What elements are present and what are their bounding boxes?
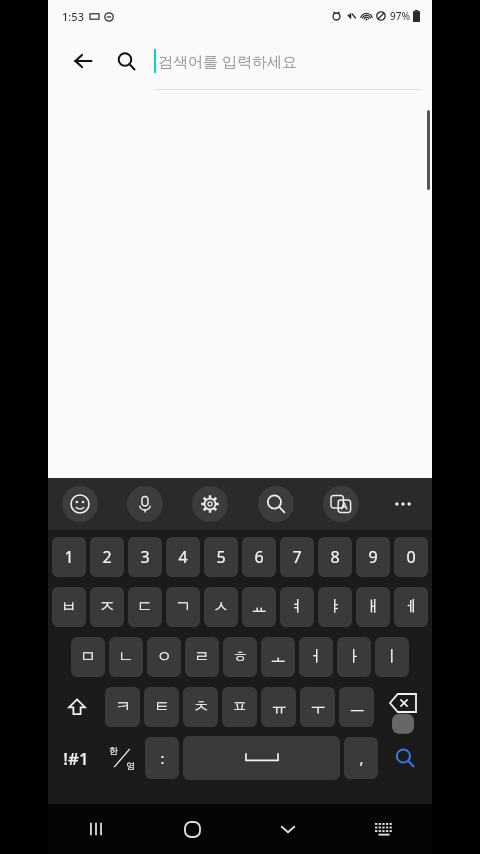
button[interactable]: 8 <box>318 537 352 577</box>
staticText: ㅈ <box>99 597 115 617</box>
button[interactable]: Home <box>144 804 240 854</box>
button[interactable]: ㅇ <box>147 637 181 677</box>
staticText: ㅇ <box>156 647 172 667</box>
button[interactable]: 2 <box>90 537 124 577</box>
button[interactable]: ㄷ <box>128 587 162 627</box>
button[interactable]: 5 <box>204 537 238 577</box>
button[interactable]: 6 <box>242 537 276 577</box>
button[interactable]: ㅜ <box>300 687 335 727</box>
button[interactable]: ㅅ <box>204 587 238 627</box>
button[interactable]: Space <box>183 736 340 780</box>
staticText: ㄷ <box>137 597 153 617</box>
staticText: !#1 <box>63 747 89 770</box>
staticText: ㅡ <box>349 697 365 717</box>
staticText: ㅕ <box>289 597 305 617</box>
button[interactable]: ㅡ <box>339 687 374 727</box>
button[interactable]: ㅋ <box>105 687 140 727</box>
staticText: 9 <box>368 546 378 568</box>
button[interactable]: Emoji <box>62 486 98 522</box>
button[interactable]: Back <box>66 44 100 78</box>
staticText: 영 <box>126 760 135 771</box>
button[interactable]: Keyboard settings <box>192 486 228 522</box>
staticText: ㅐ <box>365 597 381 617</box>
staticText: ㄱ <box>175 597 191 617</box>
button[interactable]: ㅔ <box>394 587 428 627</box>
button[interactable]: 3 <box>128 537 162 577</box>
button[interactable]: Shift <box>50 682 103 732</box>
button[interactable]: ㅐ <box>356 587 390 627</box>
button[interactable]: !#1 <box>50 732 101 784</box>
staticText: 5 <box>216 546 226 568</box>
button[interactable]: 9 <box>356 537 390 577</box>
staticText: ㅂ <box>61 597 77 617</box>
staticText: ㅌ <box>154 697 170 717</box>
staticText: ㅓ <box>308 647 324 667</box>
button[interactable]: , <box>344 737 378 779</box>
button[interactable]: ㅣ <box>375 637 409 677</box>
staticText: : <box>160 748 165 768</box>
button[interactable]: 0 <box>394 537 428 577</box>
button[interactable]: More options <box>388 489 418 519</box>
button[interactable]: 7 <box>280 537 314 577</box>
button[interactable]: Backspace <box>376 682 430 732</box>
button[interactable]: Search <box>380 732 430 784</box>
staticText: 0 <box>406 546 416 568</box>
button[interactable]: ㅗ <box>261 637 295 677</box>
button[interactable]: Change keyboard <box>336 804 432 854</box>
button[interactable]: Search <box>110 45 142 77</box>
button[interactable]: : <box>145 737 179 779</box>
staticText: ㅁ <box>80 647 96 667</box>
staticText: ㅜ <box>310 697 326 717</box>
button[interactable]: ㅂ <box>52 587 86 627</box>
staticText: 6 <box>254 546 264 568</box>
staticText: 8 <box>330 546 340 568</box>
staticText: ㅊ <box>193 697 209 717</box>
staticText: 7 <box>292 546 302 568</box>
staticText: 1 <box>64 546 74 568</box>
button[interactable]: ㄱ <box>166 587 200 627</box>
staticText: ㅅ <box>213 597 229 617</box>
button[interactable]: ㅏ <box>337 637 371 677</box>
button[interactable]: 1 <box>52 537 86 577</box>
staticText: ㅗ <box>270 647 286 667</box>
staticText: 검색어를 입력하세요 <box>158 51 297 71</box>
button[interactable]: ㅈ <box>90 587 124 627</box>
button[interactable]: ㅕ <box>280 587 314 627</box>
staticText: ㄴ <box>118 647 134 667</box>
staticText: 1:53 <box>62 9 84 24</box>
staticText: ㅔ <box>403 597 419 617</box>
button[interactable]: ㅊ <box>183 687 218 727</box>
staticText: ㅣ <box>384 647 400 667</box>
button[interactable]: Translate <box>323 486 359 522</box>
staticText: ㅠ <box>271 697 287 717</box>
staticText: 한 <box>109 745 118 756</box>
button[interactable]: ㅠ <box>261 687 296 727</box>
staticText: ㅍ <box>232 697 248 717</box>
staticText: ㅋ <box>115 697 131 717</box>
staticText: 3 <box>140 546 150 568</box>
staticText: , <box>359 748 364 768</box>
button[interactable]: ㅛ <box>242 587 276 627</box>
button[interactable]: ㅍ <box>222 687 257 727</box>
button[interactable]: ㄴ <box>109 637 143 677</box>
button[interactable]: ㅁ <box>71 637 105 677</box>
staticText: ㅛ <box>251 597 267 617</box>
button[interactable]: Voice input <box>127 486 163 522</box>
staticText: ㅏ <box>346 647 362 667</box>
button[interactable]: ㅓ <box>299 637 333 677</box>
button[interactable]: 4 <box>166 537 200 577</box>
button[interactable]: ㅑ <box>318 587 352 627</box>
button[interactable]: ㅌ <box>144 687 179 727</box>
staticText: ㅑ <box>327 597 343 617</box>
button[interactable]: ㄹ <box>185 637 219 677</box>
button[interactable]: Recent apps <box>48 804 144 854</box>
staticText: 4 <box>178 546 188 568</box>
staticText: ㅎ <box>232 647 248 667</box>
button[interactable]: ㅎ <box>223 637 257 677</box>
button[interactable]: Search <box>258 486 294 522</box>
staticText: ㄹ <box>194 647 210 667</box>
staticText: 2 <box>102 546 112 568</box>
staticText: 97% <box>390 9 410 23</box>
button[interactable]: Hide keyboard <box>240 804 336 854</box>
button[interactable]: Korean English toggle <box>101 732 143 784</box>
